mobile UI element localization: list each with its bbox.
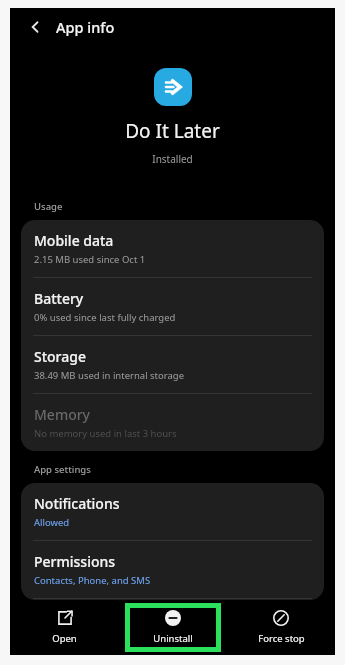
button[interactable]: Permissions xyxy=(21,541,324,599)
staticText: Uninstall xyxy=(153,632,193,645)
staticText: Installed xyxy=(10,152,335,166)
staticText: 0% used since last fully charged xyxy=(34,311,176,324)
button[interactable]: Open xyxy=(10,600,119,655)
staticText: Usage xyxy=(34,200,63,213)
staticText: Force stop xyxy=(258,632,305,645)
button[interactable]: Force stop xyxy=(227,600,335,655)
button[interactable]: Set as default xyxy=(21,599,324,600)
staticText: Do It Later xyxy=(10,118,335,144)
staticText: 38.49 MB used in internal storage xyxy=(34,369,185,382)
staticText: Open xyxy=(52,632,77,645)
staticText: Allowed xyxy=(34,516,70,529)
button[interactable]: Back xyxy=(20,12,50,42)
staticText: Permissions xyxy=(34,552,116,571)
staticText: Storage xyxy=(34,347,86,366)
staticText: Contacts, Phone, and SMS xyxy=(34,574,151,587)
staticText: Memory xyxy=(34,405,91,424)
staticText: No memory used in last 3 hours xyxy=(34,427,177,440)
button[interactable]: Battery xyxy=(21,278,324,336)
button[interactable]: Uninstall xyxy=(130,608,216,647)
button[interactable]: Notifications xyxy=(21,483,324,541)
staticText: App info xyxy=(56,17,115,37)
button[interactable]: Mobile data xyxy=(21,220,324,278)
button[interactable]: Memory xyxy=(21,394,324,451)
button[interactable]: Storage xyxy=(21,336,324,394)
staticText: App settings xyxy=(34,463,91,476)
staticText: Battery xyxy=(34,289,84,308)
staticText: Notifications xyxy=(34,494,120,513)
staticText: Mobile data xyxy=(34,231,114,250)
staticText: 2.15 MB used since Oct 1 xyxy=(34,253,146,266)
